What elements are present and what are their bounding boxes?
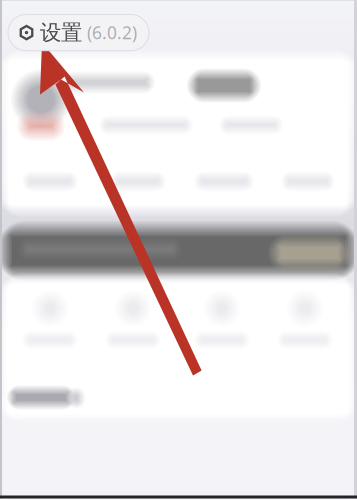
staticText: 设置 [40,19,82,46]
staticText: (6.0.2) [87,21,137,44]
button[interactable]: 设置 [8,14,149,51]
